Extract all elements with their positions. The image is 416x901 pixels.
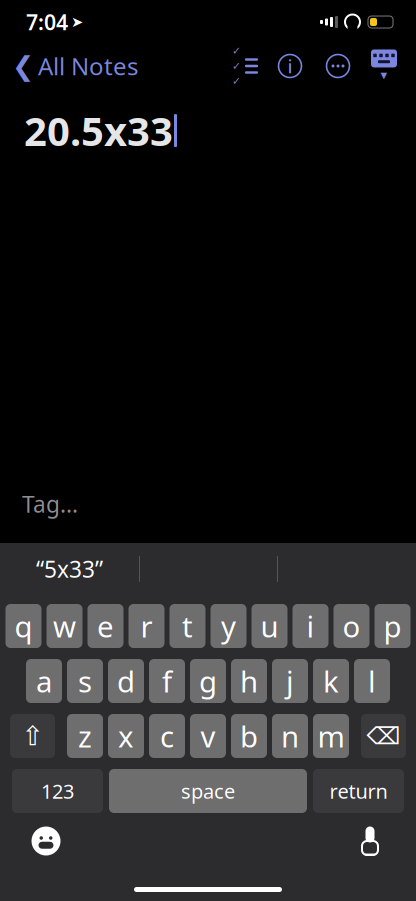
staticText: y bbox=[221, 606, 236, 645]
button[interactable]: c bbox=[149, 714, 185, 758]
button[interactable]: s bbox=[67, 659, 103, 703]
staticText: p bbox=[383, 606, 401, 645]
staticText: b bbox=[240, 716, 258, 755]
button[interactable]: x bbox=[108, 714, 144, 758]
staticText: c bbox=[160, 716, 174, 755]
staticText: s bbox=[78, 661, 92, 700]
staticText: ▾ bbox=[380, 67, 387, 82]
staticText: g bbox=[199, 661, 217, 700]
button[interactable]: h bbox=[231, 659, 267, 703]
staticText: q bbox=[14, 606, 32, 645]
staticText: ➤ bbox=[71, 14, 83, 30]
button[interactable]: return bbox=[313, 769, 404, 813]
staticText: ✓ bbox=[232, 75, 241, 87]
staticText: l bbox=[368, 661, 376, 700]
button[interactable]: Shift bbox=[10, 714, 55, 758]
staticText: Tag... bbox=[22, 489, 78, 519]
staticText: i bbox=[306, 606, 314, 645]
staticText: i bbox=[287, 54, 292, 78]
staticText: k bbox=[323, 661, 339, 700]
staticText: 20.5x33 bbox=[24, 104, 173, 157]
button[interactable]: Dictation bbox=[342, 819, 398, 863]
button[interactable]: q bbox=[5, 604, 41, 648]
staticText: ⇧ bbox=[21, 721, 43, 751]
button[interactable]: Delete bbox=[361, 714, 406, 758]
button[interactable]: y bbox=[210, 604, 246, 648]
button[interactable]: k bbox=[313, 659, 349, 703]
staticText: n bbox=[281, 716, 299, 755]
button[interactable]: z bbox=[67, 714, 103, 758]
staticText: h bbox=[240, 661, 258, 700]
staticText: “5x33” bbox=[36, 554, 103, 584]
staticText: All Notes bbox=[38, 50, 138, 82]
staticText: a bbox=[36, 661, 52, 700]
staticText: f bbox=[162, 661, 172, 700]
button[interactable]: Checklist bbox=[224, 47, 266, 85]
button[interactable]: l bbox=[354, 659, 390, 703]
staticText: d bbox=[117, 661, 135, 700]
staticText: u bbox=[260, 606, 278, 645]
button[interactable]: Emoji bbox=[18, 819, 74, 863]
staticText: w bbox=[53, 606, 76, 645]
button[interactable]: d bbox=[108, 659, 144, 703]
button[interactable]: g bbox=[190, 659, 226, 703]
button[interactable]: Hide Keyboard bbox=[362, 47, 406, 85]
button[interactable]: n bbox=[272, 714, 308, 758]
staticText: x bbox=[118, 716, 134, 755]
staticText: ❮ bbox=[12, 51, 34, 81]
button[interactable]: ❮ bbox=[0, 44, 138, 88]
staticText: ✓ bbox=[232, 45, 241, 57]
button[interactable]: e bbox=[87, 604, 123, 648]
staticText: z bbox=[78, 716, 92, 755]
staticText: 7:04 bbox=[26, 8, 68, 36]
button[interactable]: m bbox=[313, 714, 349, 758]
staticText: ✓ bbox=[232, 60, 241, 72]
staticText: 123 bbox=[41, 778, 74, 804]
button[interactable]: j bbox=[272, 659, 308, 703]
button[interactable]: 123 bbox=[12, 769, 103, 813]
button[interactable]: u bbox=[251, 604, 287, 648]
button[interactable]: f bbox=[149, 659, 185, 703]
staticText: v bbox=[200, 716, 215, 755]
staticText: ⌫ bbox=[366, 722, 400, 750]
button[interactable]: r bbox=[128, 604, 164, 648]
staticText: j bbox=[286, 661, 294, 700]
staticText: r bbox=[140, 606, 152, 645]
staticText: return bbox=[329, 778, 387, 804]
button[interactable]: p bbox=[374, 604, 410, 648]
button[interactable]: More bbox=[314, 47, 362, 85]
staticText: t bbox=[182, 606, 193, 645]
button[interactable]: b bbox=[231, 714, 267, 758]
staticText: m bbox=[317, 716, 344, 755]
button[interactable]: t bbox=[169, 604, 205, 648]
button[interactable]: o bbox=[333, 604, 369, 648]
button[interactable]: v bbox=[190, 714, 226, 758]
button[interactable]: space bbox=[109, 769, 307, 813]
button[interactable]: w bbox=[46, 604, 82, 648]
button[interactable]: “5x33” bbox=[0, 546, 139, 592]
staticText: space bbox=[181, 778, 235, 804]
button[interactable]: i bbox=[292, 604, 328, 648]
button[interactable]: a bbox=[26, 659, 62, 703]
staticText: e bbox=[97, 606, 114, 645]
button[interactable]: Info bbox=[266, 47, 314, 85]
staticText: o bbox=[342, 606, 360, 645]
